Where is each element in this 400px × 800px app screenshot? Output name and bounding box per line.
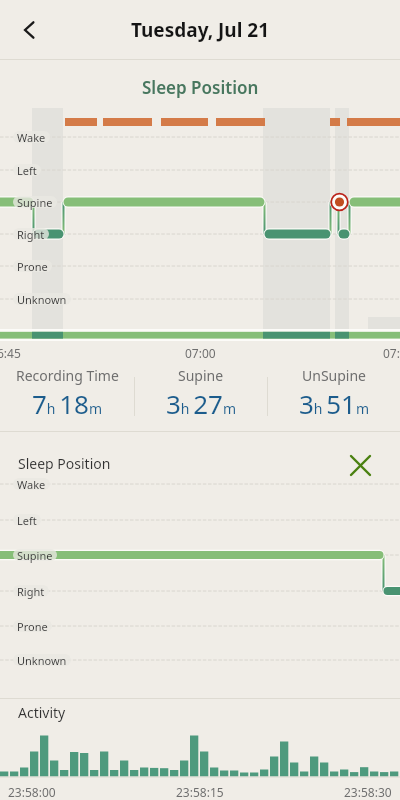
staticText: Right	[17, 584, 45, 599]
staticText: Left	[17, 513, 37, 528]
staticText: 3h 27m	[166, 386, 236, 421]
staticText: 23:58:00	[8, 784, 56, 800]
staticText: Supine	[17, 548, 53, 563]
button[interactable]: Supine	[134, 364, 267, 424]
staticText: Supine	[178, 366, 224, 385]
staticText: Unknown	[17, 293, 67, 305]
button[interactable]: Sleep Position	[142, 76, 259, 98]
staticText: Prone	[17, 619, 48, 634]
button[interactable]: Recording Time	[0, 364, 134, 424]
staticText: Wake	[17, 131, 46, 143]
staticText: Wake	[17, 478, 46, 490]
staticText: Supine	[17, 196, 53, 208]
staticText: Supine	[17, 195, 53, 210]
staticText: Wake	[17, 477, 46, 492]
staticText: Prone	[17, 620, 48, 632]
staticText: UnSupine	[302, 366, 366, 385]
staticText: Right	[17, 228, 45, 240]
staticText: Unknown	[17, 653, 67, 668]
button[interactable]: Back	[0, 1, 58, 59]
staticText: Supine	[17, 549, 53, 561]
staticText: Activity	[18, 703, 66, 722]
staticText: 07:	[383, 345, 400, 361]
staticText: Recording Time	[16, 366, 119, 385]
staticText: Prone	[17, 259, 48, 274]
staticText: Left	[17, 514, 37, 526]
staticText: Unknown	[17, 292, 67, 307]
staticText: 6:45	[0, 345, 21, 361]
button[interactable]: Sleep Position	[18, 454, 111, 473]
staticText: Right	[17, 585, 45, 597]
staticText: 3h 51m	[299, 386, 369, 421]
staticText: Wake	[17, 130, 46, 145]
staticText: Tuesday, Jul 21	[131, 17, 270, 43]
staticText: 07:00	[185, 345, 216, 361]
staticText: Unknown	[17, 654, 67, 666]
staticText: Prone	[17, 260, 48, 272]
staticText: 23:58:30	[344, 784, 392, 800]
staticText: Left	[17, 164, 37, 176]
button[interactable]: Close	[345, 450, 376, 481]
button[interactable]: UnSupine	[267, 364, 400, 424]
staticText: 7h 18m	[32, 386, 102, 421]
staticText: Right	[17, 227, 45, 242]
staticText: 23:58:15	[176, 784, 224, 800]
staticText: Left	[17, 163, 37, 178]
